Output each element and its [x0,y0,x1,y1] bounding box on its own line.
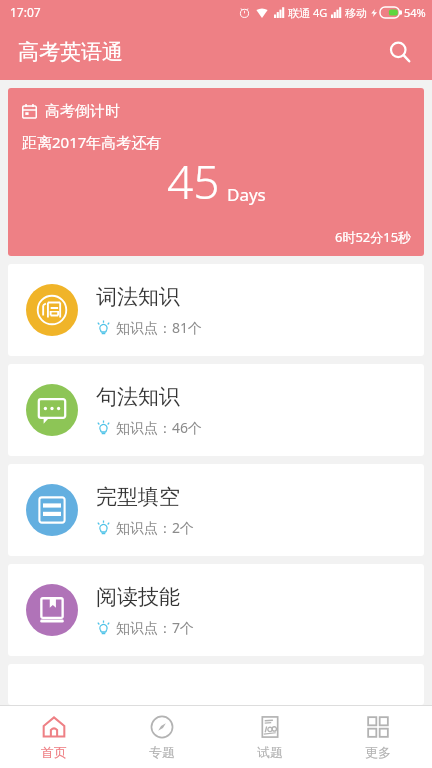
staticText: 完型填空 [96,484,180,510]
staticText: 知识点：7个 [116,618,195,637]
staticText: 首页 [41,744,67,760]
button[interactable]: 词法知识 [8,264,424,356]
staticText: 54% [404,5,426,20]
button[interactable]: 句法知识 [8,364,424,456]
staticText: 阅读技能 [96,584,180,610]
staticText: 联通 [288,6,310,20]
staticText: 17:07 [10,4,41,20]
button[interactable]: 阅读技能 [8,564,424,656]
staticText: Days [227,183,266,206]
staticText: 知识点：81个 [116,318,203,337]
staticText: 知识点：46个 [116,418,203,437]
button[interactable]: Search [378,30,422,74]
button[interactable]: 更多 [324,706,432,768]
button[interactable]: 专题 [108,706,216,768]
staticText: 更多 [365,744,391,760]
staticText: 移动 [345,6,367,20]
staticText: 试题 [257,744,283,760]
staticText: 距离2017年高考还有 [22,132,162,152]
button[interactable]: 完型填空 [8,464,424,556]
staticText: 高考英语通 [18,39,123,65]
staticText: 4G [313,5,328,20]
staticText: 高考倒计时 [45,102,120,121]
button[interactable]: 试题 [216,706,324,768]
staticText: 6时52分15秒 [335,228,412,246]
staticText: 45 [167,150,220,213]
staticText: 专题 [149,744,175,760]
button[interactable]: 首页 [0,706,108,768]
button[interactable]: 高考倒计时 [8,88,424,256]
staticText: 句法知识 [96,384,180,410]
staticText: 知识点：2个 [116,518,195,537]
staticText: 词法知识 [96,284,180,310]
